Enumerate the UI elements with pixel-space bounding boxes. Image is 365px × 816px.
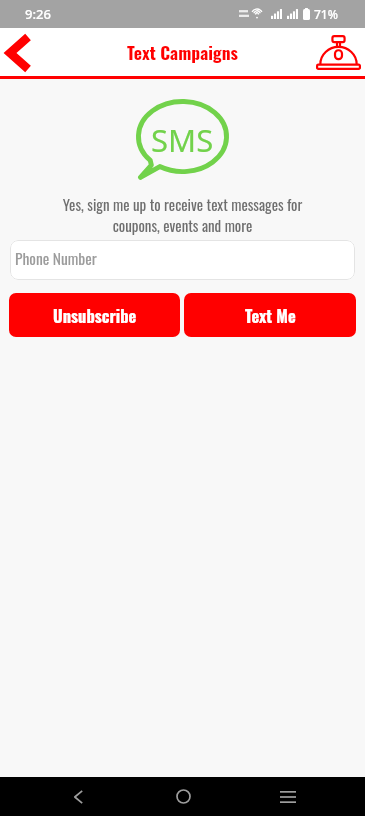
staticText: 71% bbox=[314, 6, 338, 22]
button[interactable]: Orders bbox=[312, 29, 365, 76]
button[interactable]: Back bbox=[0, 29, 38, 76]
button[interactable]: Home bbox=[157, 777, 210, 816]
staticText: Yes, sign me up to receive text messages… bbox=[54, 193, 311, 236]
staticText: Unsubscribe bbox=[53, 303, 137, 327]
staticText: Text Campaigns bbox=[127, 39, 238, 65]
staticText: SMS bbox=[151, 119, 214, 161]
staticText: 9:26 bbox=[25, 5, 51, 23]
staticText: Text Me bbox=[245, 303, 296, 327]
staticText: Phone Number bbox=[15, 247, 97, 270]
button[interactable]: Back bbox=[52, 777, 105, 816]
button[interactable]: Phone Number bbox=[10, 240, 355, 280]
button[interactable]: Text Me bbox=[184, 293, 356, 337]
button[interactable]: Recent apps bbox=[261, 777, 314, 816]
button[interactable]: Unsubscribe bbox=[9, 293, 180, 337]
